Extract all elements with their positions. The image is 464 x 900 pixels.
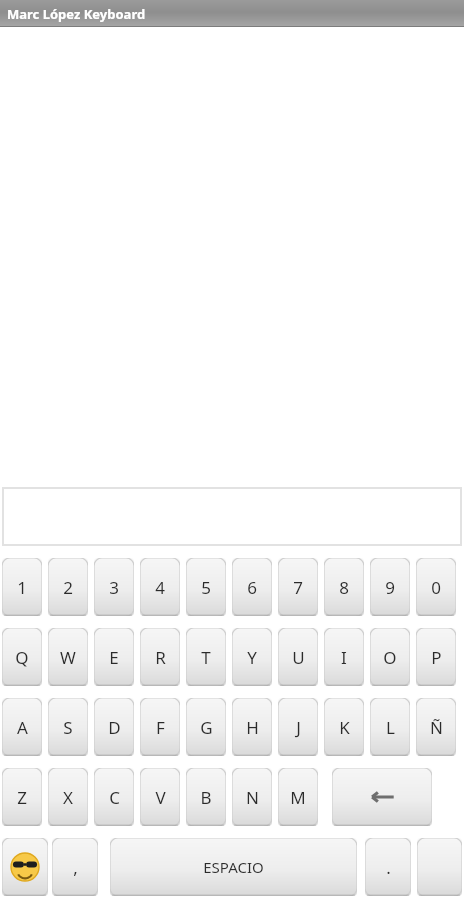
button[interactable]: 7	[278, 558, 318, 616]
button[interactable]: 6	[232, 558, 272, 616]
button[interactable]: 5	[186, 558, 226, 616]
staticText: ,	[73, 856, 78, 879]
button[interactable]: X	[48, 768, 88, 826]
staticText: I	[341, 646, 347, 669]
staticText: 5	[201, 576, 211, 599]
button[interactable]: H	[232, 698, 272, 756]
button[interactable]: 2	[48, 558, 88, 616]
staticText: P	[431, 646, 442, 669]
button[interactable]: ESPACIO	[110, 838, 357, 896]
staticText: B	[200, 786, 212, 809]
button[interactable]: E	[94, 628, 134, 686]
staticText: G	[200, 716, 213, 739]
button[interactable]: Ñ	[416, 698, 456, 756]
button[interactable]: R	[140, 628, 180, 686]
button[interactable]: V	[140, 768, 180, 826]
staticText: O	[383, 646, 397, 669]
button[interactable]: D	[94, 698, 134, 756]
staticText: V	[155, 786, 166, 809]
button[interactable]: A	[2, 698, 42, 756]
button[interactable]: I	[324, 628, 364, 686]
button[interactable]: Z	[2, 768, 42, 826]
staticText: U	[292, 646, 305, 669]
staticText: D	[108, 716, 121, 739]
button[interactable]: P	[416, 628, 456, 686]
staticText: A	[17, 716, 28, 739]
staticText: ESPACIO	[203, 857, 264, 877]
staticText: 1	[17, 576, 27, 599]
button[interactable]: L	[370, 698, 410, 756]
button[interactable]: 9	[370, 558, 410, 616]
staticText: 6	[247, 576, 257, 599]
button[interactable]: O	[370, 628, 410, 686]
staticText: S	[63, 716, 73, 739]
staticText: E	[109, 646, 119, 669]
staticText: Q	[15, 646, 29, 669]
staticText: F	[156, 716, 165, 739]
button[interactable]	[3, 488, 461, 545]
staticText: W	[60, 646, 76, 669]
button[interactable]: ,	[52, 838, 98, 896]
button[interactable]: Q	[2, 628, 42, 686]
staticText: T	[201, 646, 211, 669]
staticText: Ñ	[430, 716, 443, 739]
button[interactable]: M	[278, 768, 318, 826]
button[interactable]: K	[324, 698, 364, 756]
staticText: K	[339, 716, 350, 739]
staticText: H	[246, 716, 259, 739]
button[interactable]: N	[232, 768, 272, 826]
button[interactable]: C	[94, 768, 134, 826]
button[interactable]: G	[186, 698, 226, 756]
staticText: N	[246, 786, 259, 809]
staticText: 3	[109, 576, 119, 599]
staticText: L	[386, 716, 395, 739]
staticText: 9	[385, 576, 395, 599]
staticText: 4	[155, 576, 165, 599]
button[interactable]: 1	[2, 558, 42, 616]
staticText: Y	[247, 646, 257, 669]
staticText: R	[155, 646, 166, 669]
button[interactable]: 8	[324, 558, 364, 616]
staticText: X	[63, 786, 73, 809]
staticText: 7	[293, 576, 303, 599]
button[interactable]: .	[365, 838, 411, 896]
button[interactable]: 3	[94, 558, 134, 616]
staticText: 0	[431, 576, 441, 599]
button[interactable]: S	[48, 698, 88, 756]
button[interactable]: U	[278, 628, 318, 686]
button[interactable]: T	[186, 628, 226, 686]
staticText: 8	[339, 576, 349, 599]
staticText: 2	[63, 576, 73, 599]
button[interactable]: Key	[417, 838, 462, 896]
button[interactable]: 0	[416, 558, 456, 616]
button[interactable]: Emoji	[2, 838, 48, 896]
staticText: J	[296, 716, 301, 739]
staticText: C	[109, 786, 120, 809]
button[interactable]: F	[140, 698, 180, 756]
button[interactable]: Backspace	[332, 768, 432, 826]
button[interactable]: W	[48, 628, 88, 686]
button[interactable]: 4	[140, 558, 180, 616]
button[interactable]: B	[186, 768, 226, 826]
button[interactable]: Y	[232, 628, 272, 686]
staticText: Marc López Keyboard	[7, 5, 146, 23]
button[interactable]: J	[278, 698, 318, 756]
staticText: M	[290, 786, 306, 809]
staticText: Z	[17, 786, 27, 809]
staticText: .	[386, 856, 391, 879]
